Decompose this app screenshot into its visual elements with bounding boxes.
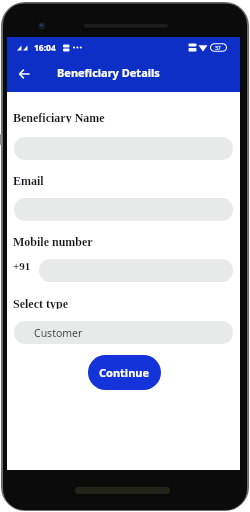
button[interactable]: Customer (14, 321, 233, 344)
button[interactable] (14, 198, 233, 221)
staticText: Mobile number (13, 235, 93, 247)
staticText: Select type (13, 297, 68, 309)
staticText: 37 (215, 45, 221, 52)
staticText: Continue (99, 365, 150, 380)
button[interactable] (13, 63, 35, 85)
staticText: Beneficiary Name (13, 111, 105, 123)
staticText: 16:04 (34, 42, 56, 54)
button[interactable] (14, 137, 233, 160)
button[interactable]: Continue (88, 355, 161, 390)
button[interactable] (39, 259, 233, 282)
staticText: Customer (34, 326, 83, 340)
staticText: Beneficiary Details (57, 65, 160, 80)
staticText: +91 (13, 260, 31, 272)
staticText: Email (13, 174, 44, 186)
